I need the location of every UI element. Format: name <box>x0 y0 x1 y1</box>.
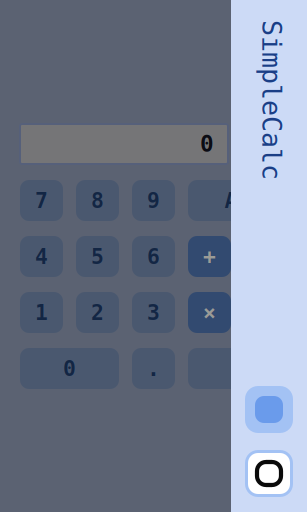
button[interactable]: 4 <box>20 236 63 277</box>
button[interactable]: 3 <box>132 292 175 333</box>
staticText: + <box>203 244 216 269</box>
staticText: . <box>147 356 160 381</box>
button[interactable]: × <box>188 292 231 333</box>
staticText: 7 <box>35 188 48 213</box>
staticText: 6 <box>147 244 160 269</box>
staticText: 5 <box>91 244 104 269</box>
staticText: × <box>203 300 216 325</box>
staticText: 4 <box>35 244 48 269</box>
button[interactable]: 2 <box>76 292 119 333</box>
staticText: 0 <box>200 131 214 157</box>
staticText: 0 <box>63 356 76 381</box>
staticText: 8 <box>91 188 104 213</box>
button[interactable]: + <box>188 236 231 277</box>
button[interactable]: 9 <box>132 180 175 221</box>
button[interactable]: = <box>188 348 287 389</box>
staticText: 1 <box>35 300 48 325</box>
button[interactable]: 7 <box>20 180 63 221</box>
button[interactable]: Close <box>245 450 293 497</box>
button[interactable]: 0 <box>20 348 119 389</box>
button[interactable]: . <box>132 348 175 389</box>
button[interactable]: SimpleCalc <box>245 386 293 433</box>
staticText: SimpleCalc <box>191 84 307 115</box>
button[interactable]: 6 <box>132 236 175 277</box>
staticText: AC <box>224 188 250 213</box>
button[interactable]: 5 <box>76 236 119 277</box>
staticText: 2 <box>91 300 104 325</box>
button[interactable]: 8 <box>76 180 119 221</box>
button[interactable]: 1 <box>20 292 63 333</box>
button[interactable]: AC <box>188 180 287 221</box>
staticText: 3 <box>147 300 160 325</box>
staticText: 9 <box>147 188 160 213</box>
